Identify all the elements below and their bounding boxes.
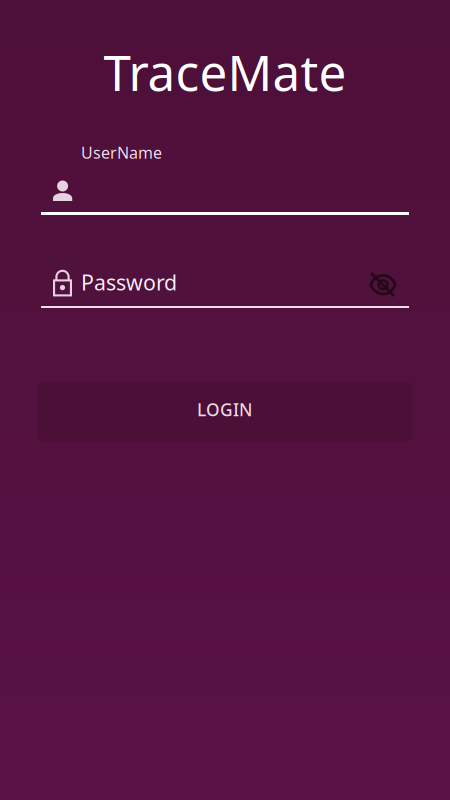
button[interactable]: UserName field: [41, 176, 409, 226]
staticText: Password: [81, 268, 177, 296]
staticText: LOGIN: [197, 398, 252, 421]
button[interactable]: Show password: [366, 268, 400, 302]
staticText: TraceMate: [103, 39, 346, 104]
button[interactable]: Password field: [41, 269, 409, 313]
button[interactable]: LOGIN: [37, 382, 412, 441]
staticText: UserName: [81, 142, 162, 163]
